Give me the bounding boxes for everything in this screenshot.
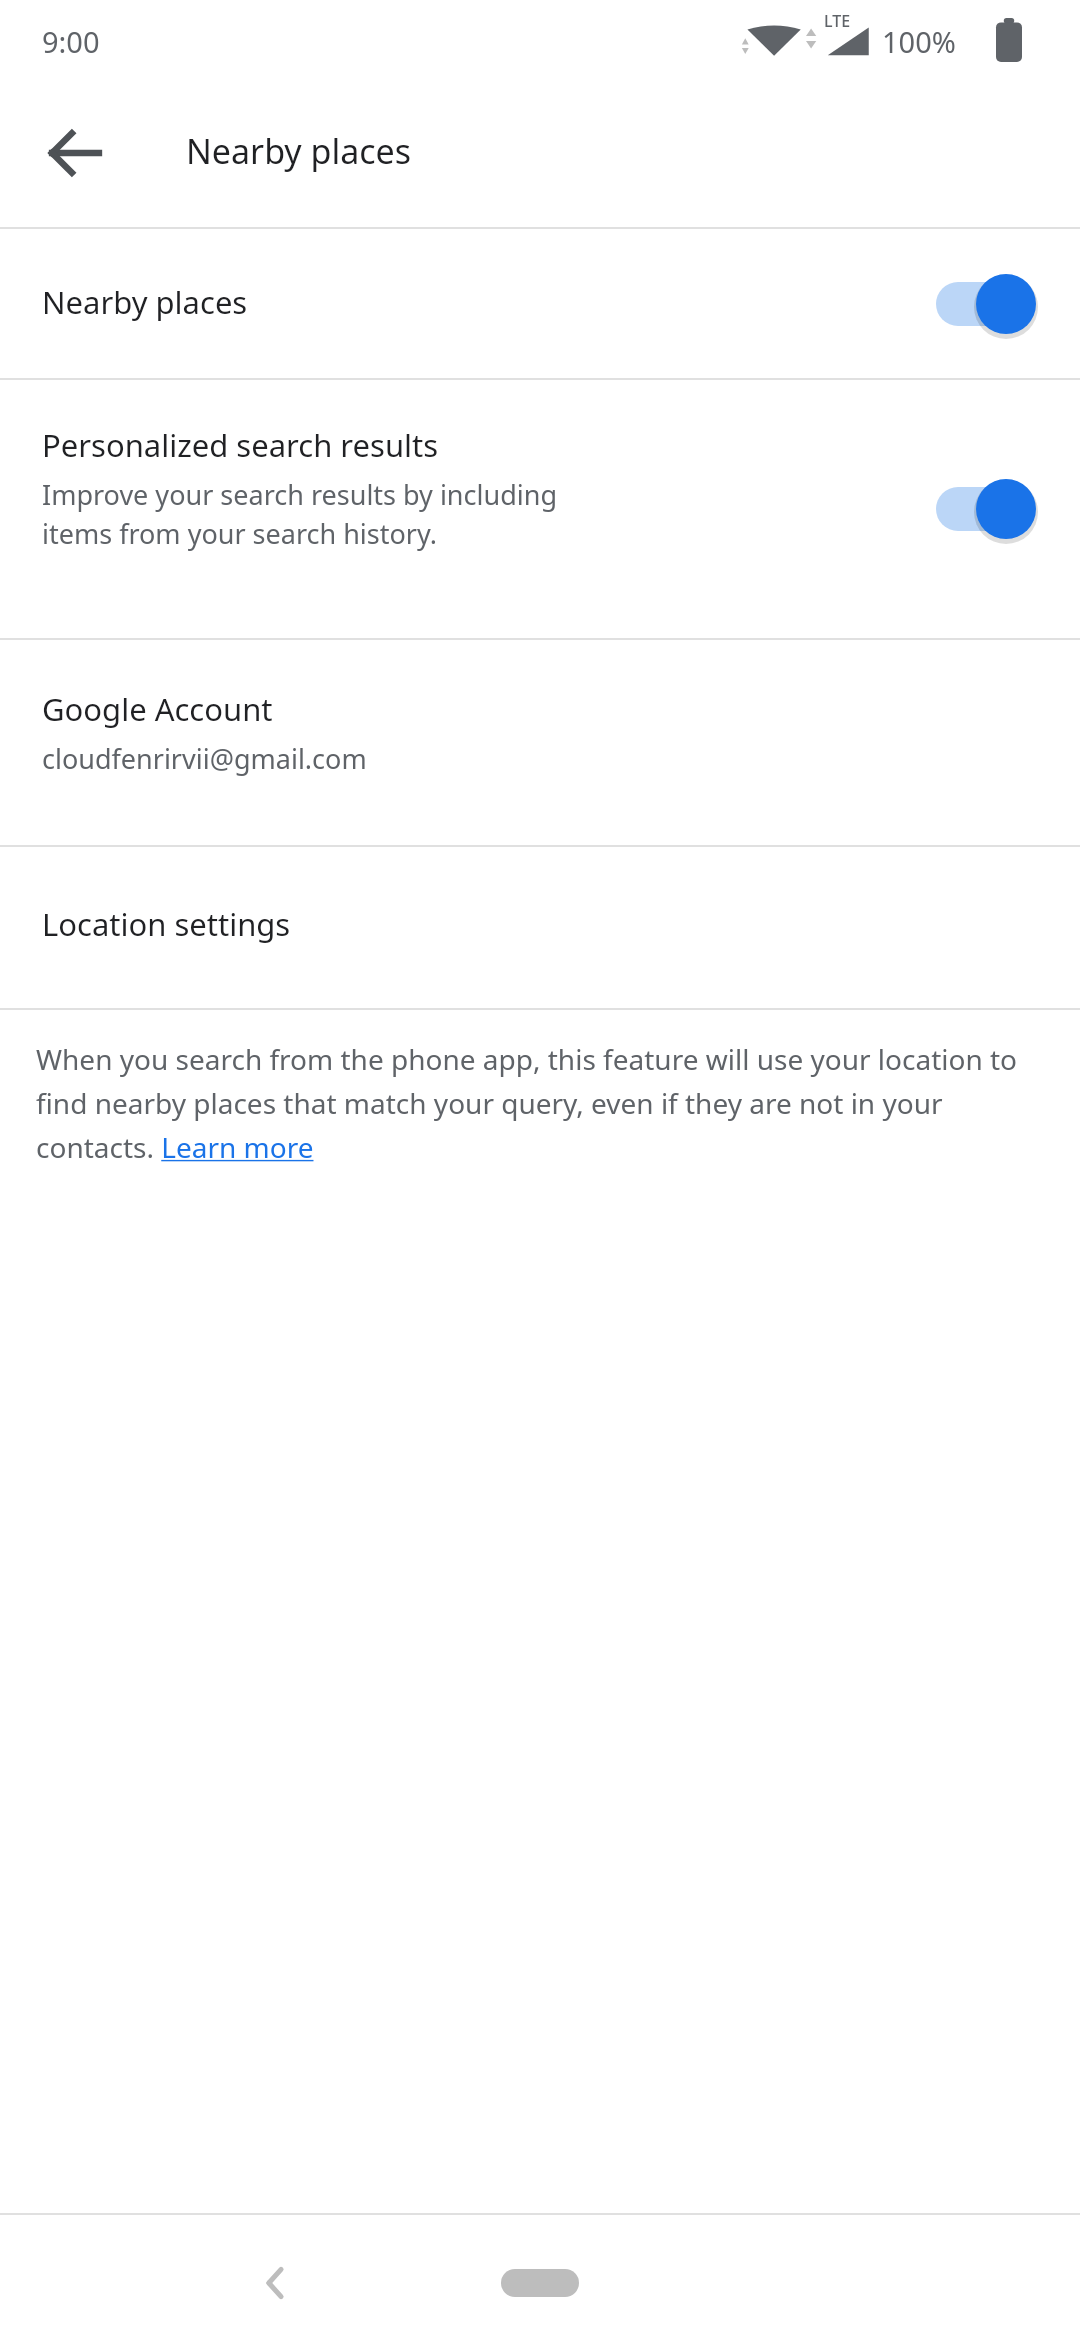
staticText: Google Account [42,688,273,730]
button[interactable]: Personalized search results [0,380,1080,638]
button[interactable]: Location settings [0,847,1080,1008]
staticText: 9:00 [42,22,100,61]
button[interactable]: Back [18,96,132,210]
button[interactable]: Back [217,2225,337,2340]
button[interactable]: Toggle [936,472,1044,546]
staticText: Nearby places [186,128,412,174]
staticText: Location settings [42,903,291,945]
button[interactable]: Nearby places [0,229,1080,378]
button[interactable]: Home [480,2254,600,2312]
staticText: 100% [882,22,956,61]
button[interactable]: When you search from the phone app, this… [36,1040,1044,1166]
staticText: Nearby places [42,281,248,323]
staticText: Personalized search results [42,424,439,466]
staticText: Improve your search results by including… [42,476,558,552]
button[interactable]: Google Account [0,640,1080,845]
staticText: LTE [824,10,851,32]
staticText: When you search from the phone app, this… [36,1040,1038,1166]
staticText: cloudfenrirvii@gmail.com [42,740,367,777]
button[interactable]: Toggle [936,267,1044,341]
